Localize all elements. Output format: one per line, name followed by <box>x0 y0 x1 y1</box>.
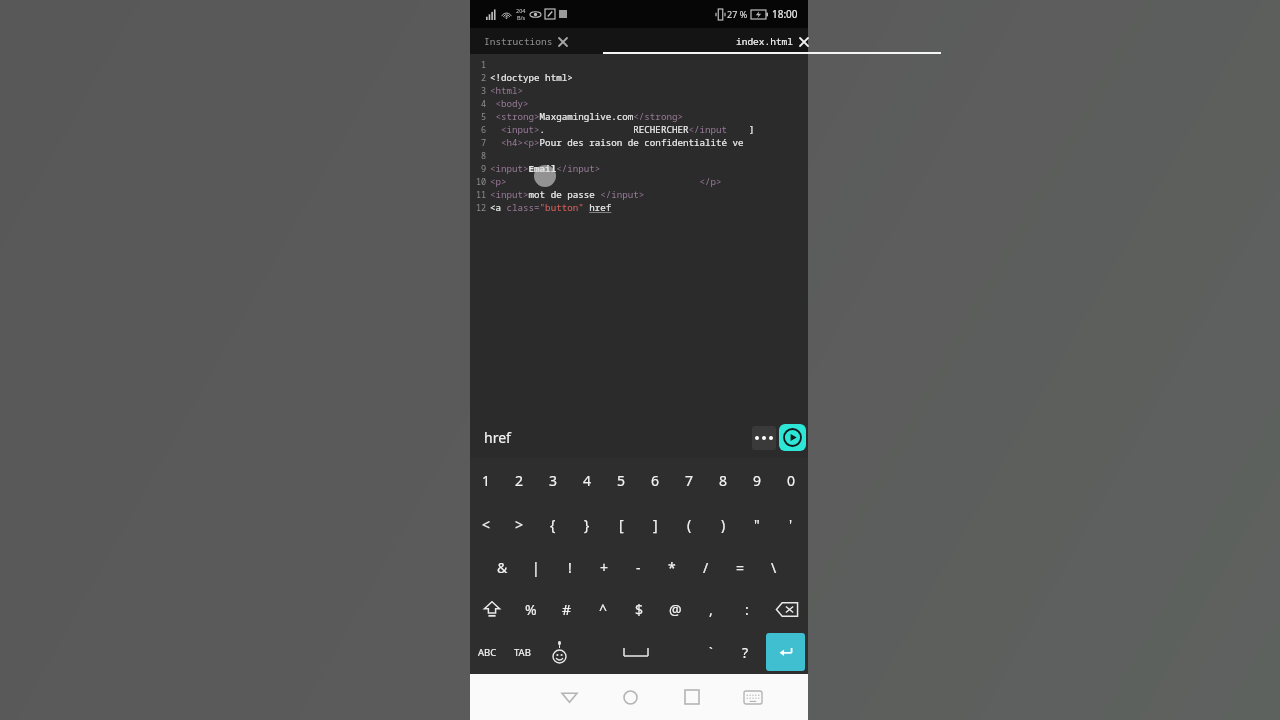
button[interactable]: 4 <box>570 458 604 502</box>
staticText: <input>Email</input> <box>490 162 601 175</box>
staticText: ` <box>709 643 713 661</box>
button[interactable]: href <box>484 428 511 447</box>
button[interactable]: } <box>570 502 604 546</box>
staticText: ! <box>568 558 572 577</box>
staticText: 7 <box>481 137 487 149</box>
button[interactable]: ( <box>672 502 706 546</box>
button[interactable]: index.html <box>603 28 941 54</box>
staticText: B/s <box>517 14 526 21</box>
staticText: - <box>636 558 641 577</box>
button[interactable]: # <box>549 588 585 630</box>
staticText: <a class="button" href <box>490 201 612 214</box>
button[interactable]: > <box>503 502 536 546</box>
staticText: [ <box>619 515 624 534</box>
button[interactable]: % <box>513 588 549 630</box>
button[interactable]: 8 <box>706 458 740 502</box>
button[interactable]: ) <box>706 502 740 546</box>
staticText: 204 <box>516 7 526 14</box>
staticText: " <box>754 515 760 534</box>
staticText: $ <box>635 600 644 619</box>
staticText: / <box>703 558 709 577</box>
button[interactable]: 1 <box>470 458 503 502</box>
staticText: ) <box>721 515 726 534</box>
button[interactable]: ' <box>774 502 808 546</box>
staticText: 3 <box>481 85 487 97</box>
staticText: 9 <box>481 163 487 175</box>
button[interactable]: + <box>587 546 621 588</box>
button[interactable]: ? <box>728 630 763 674</box>
staticText: ( <box>687 515 692 534</box>
staticText: TAB <box>514 646 531 659</box>
button[interactable]: ` <box>693 630 728 674</box>
button[interactable]: * <box>655 546 689 588</box>
staticText: 4 <box>481 98 487 110</box>
button[interactable]: Instructions <box>484 35 567 48</box>
staticText: } <box>584 515 590 534</box>
staticText: href <box>484 428 511 447</box>
staticText: <html> <box>490 84 524 97</box>
staticText: ] <box>653 515 658 534</box>
staticText: <strong>Maxgaminglive.com</strong> <box>490 110 683 123</box>
button[interactable]: / <box>689 546 723 588</box>
button[interactable]: 6 <box>638 458 672 502</box>
button[interactable]: 0 <box>774 458 808 502</box>
staticText: | <box>532 558 540 577</box>
button[interactable]: ABC <box>470 630 505 674</box>
button[interactable]: ^ <box>585 588 621 630</box>
button[interactable]: 3 <box>536 458 570 502</box>
staticText: <body> <box>490 97 529 110</box>
button[interactable]: Enter <box>766 633 805 671</box>
staticText: 11 <box>476 189 487 201</box>
button[interactable]: : <box>729 588 765 630</box>
staticText: ^ <box>599 600 608 619</box>
staticText: { <box>550 515 556 534</box>
staticText: 12 <box>476 202 487 214</box>
staticText: , <box>709 600 713 619</box>
staticText: 5 <box>617 471 626 490</box>
button[interactable]: $ <box>621 588 657 630</box>
button[interactable]: Space <box>578 630 693 674</box>
button[interactable]: Home <box>600 674 661 720</box>
button[interactable]: Run <box>779 424 806 451</box>
staticText: 7 <box>685 471 694 490</box>
button[interactable]: @ <box>657 588 693 630</box>
staticText: ABC <box>478 646 497 659</box>
button[interactable]: TAB <box>505 630 540 674</box>
button[interactable]: Recents <box>661 674 722 720</box>
button[interactable]: | <box>519 546 553 588</box>
staticText: <p> </p> <box>490 175 722 188</box>
button[interactable]: , <box>693 588 729 630</box>
button[interactable]: Shift <box>470 588 513 630</box>
button[interactable]: 5 <box>604 458 638 502</box>
button[interactable]: 7 <box>672 458 706 502</box>
button[interactable]: Back <box>539 674 600 720</box>
button[interactable]: - <box>621 546 655 588</box>
staticText: > <box>515 515 524 534</box>
button[interactable]: Backspace <box>765 588 808 630</box>
button[interactable]: Hide keyboard <box>722 674 783 720</box>
staticText: # <box>562 600 572 619</box>
staticText: 9 <box>753 471 762 490</box>
staticText: 27 % <box>727 8 748 20</box>
button[interactable]: 2 <box>503 458 536 502</box>
staticText: Instructions <box>484 35 553 48</box>
staticText: index.html <box>736 35 794 48</box>
button[interactable]: " <box>740 502 774 546</box>
staticText: < <box>482 515 491 534</box>
button[interactable]: ] <box>638 502 672 546</box>
button[interactable]: 9 <box>740 458 774 502</box>
button[interactable]: \ <box>757 546 791 588</box>
staticText: 8 <box>719 471 728 490</box>
staticText: <input>mot de passe </input> <box>490 188 645 201</box>
button[interactable]: { <box>536 502 570 546</box>
staticText: <h4><p>Pour des raison de confidentialit… <box>490 136 744 149</box>
button[interactable]: < <box>470 502 503 546</box>
button[interactable]: ! <box>553 546 587 588</box>
staticText: 8 <box>481 150 487 162</box>
button[interactable]: & <box>486 546 519 588</box>
button[interactable]: Emoji <box>540 630 578 674</box>
staticText: : <box>745 600 749 619</box>
button[interactable]: = <box>723 546 757 588</box>
button[interactable]: More options <box>752 426 776 450</box>
button[interactable]: [ <box>604 502 638 546</box>
